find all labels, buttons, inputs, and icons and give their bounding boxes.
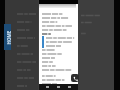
button[interactable]: Home tab [4,24,11,50]
button[interactable] [39,4,76,8]
staticText: HOME [5,30,11,44]
button[interactable]: Call [71,74,79,82]
